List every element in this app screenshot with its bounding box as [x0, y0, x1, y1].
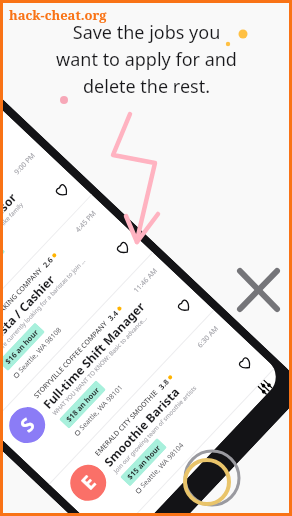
- staticText: hack-cheat.org: [9, 6, 107, 24]
- staticText: Join our growing team of smoothie artist…: [112, 384, 199, 475]
- staticText: Save the jobs you want to apply for and …: [56, 20, 237, 98]
- staticText: 6:30 AM: [195, 324, 221, 350]
- staticText: Great benefits and a team that feels lik…: [0, 200, 25, 302]
- button[interactable]: N: [0, 137, 92, 369]
- staticText: EMERALD CITY SMOOTHIE: [93, 388, 161, 458]
- staticText: Night Shift Supervisor: [0, 189, 19, 296]
- staticText: E: [75, 469, 102, 495]
- button[interactable]: Save job: [173, 295, 194, 316]
- staticText: S: [14, 412, 41, 438]
- staticText: 4:45 PM: [73, 208, 99, 235]
- staticText: Seattle, WA 98108: [16, 325, 64, 375]
- staticText: 3.4: [105, 308, 120, 323]
- staticText: Seattle, WA 98101: [77, 383, 125, 433]
- button[interactable]: Save job: [234, 353, 255, 374]
- button[interactable]: Save job: [51, 179, 72, 201]
- staticText: 2.6: [40, 255, 55, 270]
- staticText: STORYVILLE COFFEE COMPANY: [32, 319, 110, 401]
- button[interactable]: Save job: [112, 237, 133, 258]
- button[interactable]: M: [0, 195, 153, 427]
- staticText: WHAT YOU WANT TO KNOW: Basic to advance.…: [51, 314, 149, 417]
- staticText: $18 an hour: [64, 385, 101, 424]
- staticText: Full-time Shift Manager: [39, 298, 148, 412]
- staticText: Seattle, WA 98104: [138, 441, 186, 490]
- staticText: MACRINA BAKING COMPANY: [0, 266, 45, 343]
- staticText: Smoothie Barista: [100, 384, 183, 469]
- staticText: $15 an hour: [125, 443, 162, 482]
- staticText: Barista / Cashier: [0, 271, 58, 354]
- staticText: 3.8: [156, 377, 171, 392]
- staticText: We are currently looking for a baristas …: [0, 257, 88, 360]
- staticText: 11:46 AM: [132, 266, 160, 295]
- button[interactable]: Filter: [256, 378, 274, 396]
- staticText: 9:00 PM: [12, 151, 38, 177]
- button[interactable]: E: [49, 310, 275, 516]
- button[interactable]: S: [0, 252, 214, 485]
- staticText: $16 an hour: [3, 327, 40, 366]
